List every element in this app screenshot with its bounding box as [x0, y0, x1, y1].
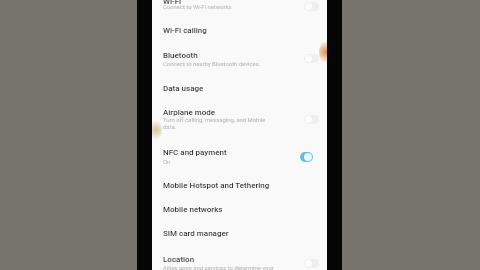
staticText: SIM card manager [163, 229, 229, 238]
staticText: Mobile networks [163, 205, 223, 214]
button[interactable]: Wi-Fi calling [152, 19, 327, 44]
staticText: Wi-Fi calling [163, 26, 207, 35]
button[interactable]: Location [152, 247, 327, 270]
button[interactable]: Mobile networks [152, 196, 327, 221]
staticText: Mobile Hotspot and Tethering [163, 181, 270, 190]
button[interactable]: Airplane mode [152, 100, 327, 139]
button[interactable]: Location [304, 259, 319, 268]
button[interactable]: Mobile Hotspot and Tethering [152, 171, 327, 196]
staticText: Location [163, 255, 195, 264]
staticText: Turn off calling, messaging, and Mobile … [163, 117, 267, 131]
button[interactable]: Bluetooth [152, 44, 327, 75]
staticText: On [163, 159, 283, 166]
staticText: Allow apps and services to determine you… [163, 265, 293, 270]
staticText: Data usage [163, 84, 204, 93]
button[interactable]: Bluetooth [304, 54, 319, 63]
staticText: Connect to Wi-Fi networks [163, 4, 283, 11]
staticText: NFC and payment [163, 148, 227, 157]
button[interactable]: NFC and payment [152, 139, 327, 171]
staticText: Airplane mode [163, 108, 216, 117]
button[interactable]: NFC and payment [300, 152, 313, 162]
staticText: Connect to nearby Bluetooth devices. [163, 61, 283, 68]
button[interactable]: Data usage [152, 75, 327, 100]
button[interactable]: Wi-Fi [152, 0, 327, 19]
button[interactable]: SIM card manager [152, 221, 327, 247]
button[interactable]: Airplane mode [304, 115, 319, 124]
staticText: Bluetooth [163, 51, 198, 60]
staticText: Wi-Fi [163, 0, 182, 6]
button[interactable]: Wi-Fi [304, 2, 319, 11]
